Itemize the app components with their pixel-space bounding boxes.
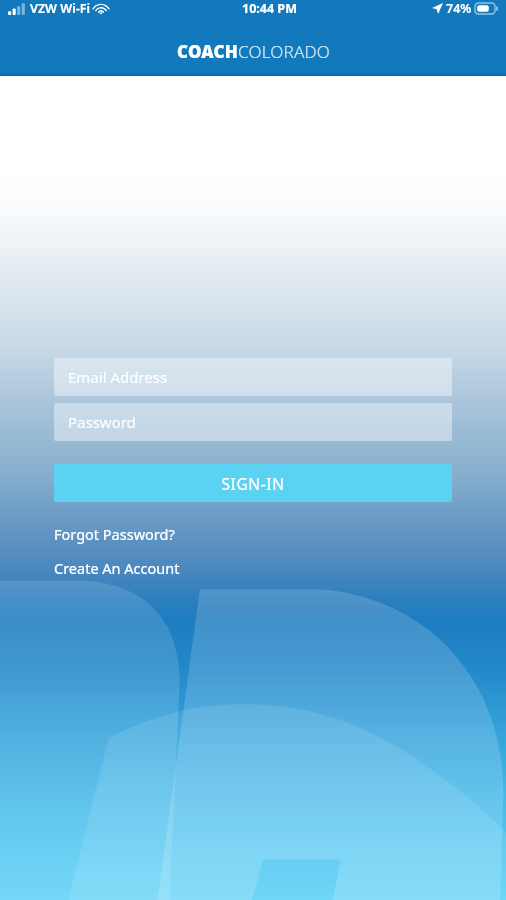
- button[interactable]: Create An Account: [54, 554, 452, 582]
- staticText: 10:44 PM: [242, 0, 297, 17]
- staticText: COLORADO: [238, 40, 330, 63]
- button[interactable]: Forgot Password?: [54, 520, 452, 548]
- staticText: SIGN-IN: [221, 473, 285, 494]
- staticText: 74%: [446, 0, 472, 17]
- staticText: Forgot Password?: [54, 524, 175, 544]
- staticText: Password: [68, 412, 136, 432]
- staticText: VZW Wi-Fi: [30, 0, 90, 17]
- staticText: Create An Account: [54, 558, 180, 578]
- staticText: Email Address: [68, 367, 168, 387]
- button[interactable]: Email Address: [54, 358, 452, 396]
- button[interactable]: SIGN-IN: [54, 464, 452, 502]
- button[interactable]: Password: [54, 403, 452, 441]
- staticText: COACH: [177, 40, 238, 63]
